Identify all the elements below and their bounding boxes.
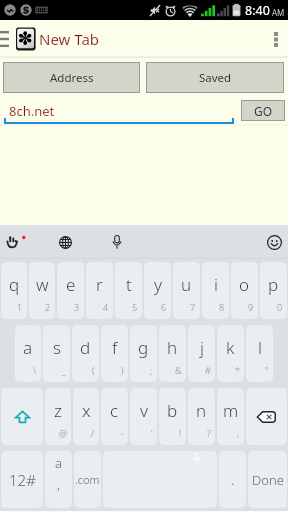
button[interactable]: . [219,451,246,508]
button[interactable]: x [73,388,99,445]
staticText: 6 [161,301,167,313]
staticText: f [112,336,118,359]
staticText: m [223,399,239,422]
staticText: GO [254,103,273,119]
button[interactable]: Shift [1,388,43,445]
button[interactable]: u [173,262,200,319]
button[interactable]: Emoji [263,231,285,253]
staticText: . [231,470,235,489]
button[interactable]: Backspace [246,388,287,445]
staticText: z [54,399,62,422]
button[interactable]: g [130,325,157,382]
button[interactable]: f [101,325,128,382]
staticText: " [265,364,269,376]
staticText: ' [151,427,153,439]
staticText: w [36,273,49,296]
staticText: ( [92,364,95,376]
staticText: p [268,273,279,296]
button[interactable]: Change language [54,231,76,253]
staticText: \ [33,364,37,376]
button[interactable]: s [43,325,70,382]
staticText: d [80,336,91,359]
button[interactable]: q [1,262,27,319]
staticText: 9 [248,301,254,313]
staticText: 1 [17,301,23,313]
button[interactable]: b [159,388,186,445]
button[interactable]: z [45,388,71,445]
button[interactable]: .com [74,451,101,508]
staticText: u [181,273,192,296]
button[interactable]: Saved [146,62,284,93]
staticText: a [55,454,62,472]
staticText: New Tab [39,29,100,49]
staticText: Done [252,471,284,489]
button[interactable]: App icon [16,27,36,51]
staticText: j [200,336,204,359]
staticText: * [235,364,240,376]
button[interactable]: a [45,451,72,508]
staticText: q [9,273,20,296]
button[interactable]: r [86,262,113,319]
button[interactable]: e [57,262,84,319]
staticText: 12# [9,470,36,490]
staticText: e [66,273,76,296]
staticText: 4 [103,301,109,313]
button[interactable]: Done [248,451,287,508]
button[interactable]: w [29,262,55,319]
staticText: y [154,273,162,296]
staticText: s [53,336,61,359]
staticText: 2 [45,301,51,313]
staticText: AM [272,7,285,18]
button[interactable]: t [115,262,142,319]
staticText: n [196,399,207,422]
button[interactable]: m [217,388,244,445]
staticText: t [126,273,132,296]
staticText: 8 [219,301,225,313]
staticText: r [96,273,103,296]
button[interactable]: i [202,262,229,319]
button[interactable]: a [15,325,41,382]
button[interactable]: p [260,262,287,319]
button[interactable]: l [246,325,273,382]
staticText: x [82,399,91,422]
button[interactable]: k [217,325,244,382]
staticText: b [167,399,178,422]
staticText: , [57,475,60,493]
button[interactable]: y [144,262,171,319]
staticText: # [205,364,211,376]
button[interactable]: GO [241,100,285,121]
staticText: ! [179,427,182,439]
button[interactable]: d [72,325,99,382]
staticText: ; [150,364,153,376]
staticText: v [140,399,148,422]
staticText: k [226,336,235,359]
button[interactable]: h [159,325,186,382]
button[interactable]: Voice input [106,231,128,253]
staticText: & [175,364,182,376]
button[interactable]: Handwriting [6,231,28,253]
button[interactable]: 8ch.net [4,97,234,126]
staticText: @ [59,427,67,439]
button[interactable]: Address [3,62,140,93]
button[interactable]: 12# [1,451,43,508]
button[interactable]: More options [264,20,288,58]
button[interactable]: n [188,388,215,445]
staticText: ) [121,364,124,376]
staticText: o [239,273,250,296]
button[interactable]: j [188,325,215,382]
staticText: 7 [190,301,196,313]
staticText: 5 [132,301,138,313]
staticText: g [138,336,149,359]
staticText: ? [207,427,211,439]
button[interactable]: c [101,388,128,445]
staticText: , [237,427,240,439]
staticText: c [110,399,119,422]
button[interactable]: o [231,262,258,319]
staticText: 0 [277,301,283,313]
staticText: / [91,427,95,439]
staticText: 3 [74,301,80,313]
staticText: 8:40 [245,2,270,19]
staticText: Address [50,70,94,86]
button[interactable]: v [130,388,157,445]
